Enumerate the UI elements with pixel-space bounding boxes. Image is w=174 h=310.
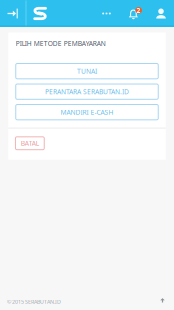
staticText: BATAL bbox=[21, 139, 39, 148]
staticText: PILIH METODE PEMBAYARAN bbox=[16, 39, 106, 48]
staticText: PERANTARA SERABUTAN.ID bbox=[45, 87, 129, 96]
button[interactable]: PERANTARA SERABUTAN.ID bbox=[16, 84, 158, 99]
button[interactable]: Serabutan.id home bbox=[26, 0, 53, 26]
button[interactable]: Notifications bbox=[120, 0, 148, 26]
button[interactable]: MANDIRI E-CASH bbox=[16, 104, 158, 120]
button[interactable]: BATAL bbox=[15, 137, 44, 150]
button[interactable]: Account bbox=[148, 0, 174, 26]
button[interactable]: Back to top bbox=[155, 296, 167, 308]
button[interactable]: Sign in bbox=[0, 0, 25, 26]
staticText: TUNAI bbox=[77, 67, 97, 76]
staticText: © 2015 SERABUTAN.ID bbox=[7, 298, 61, 305]
button[interactable]: More options bbox=[93, 0, 120, 26]
staticText: MANDIRI E-CASH bbox=[60, 108, 113, 117]
staticText: 2 bbox=[137, 6, 141, 15]
button[interactable]: TUNAI bbox=[16, 63, 158, 79]
